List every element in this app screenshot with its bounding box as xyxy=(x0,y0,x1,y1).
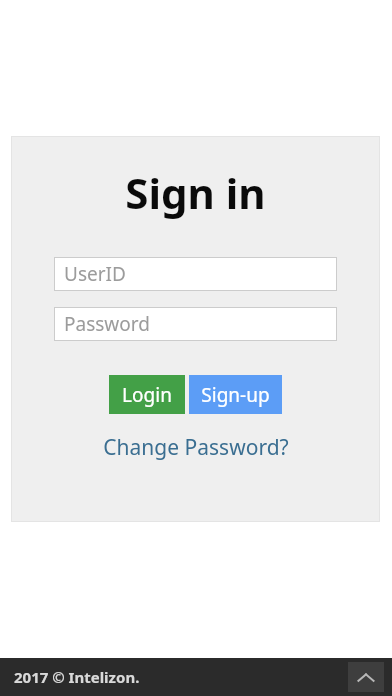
button[interactable]: Password xyxy=(54,307,337,341)
button[interactable]: Change Password? xyxy=(99,431,293,464)
button[interactable]: Sign-up xyxy=(189,375,282,414)
staticText: Change Password? xyxy=(103,433,289,462)
button[interactable]: UserID xyxy=(54,257,337,291)
staticText: UserID xyxy=(64,261,126,287)
staticText: Password xyxy=(64,311,150,337)
staticText: Sign in xyxy=(125,164,266,221)
staticText: Login xyxy=(122,382,172,408)
button[interactable]: Scroll to top xyxy=(348,662,384,692)
button[interactable]: Login xyxy=(109,375,185,414)
staticText: 2017 © Intelizon. xyxy=(14,667,140,687)
staticText: Sign-up xyxy=(201,382,270,408)
